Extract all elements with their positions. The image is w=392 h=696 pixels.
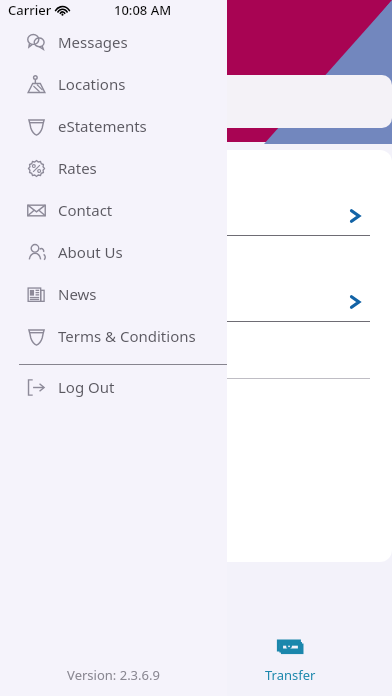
button[interactable]: Contact <box>0 189 227 231</box>
button[interactable]: eStatements <box>0 105 227 147</box>
staticText: Carrier <box>8 1 52 19</box>
staticText: Terms & Conditions <box>58 326 196 346</box>
button[interactable]: Terms & Conditions <box>0 315 227 357</box>
button[interactable]: Open details <box>20 236 392 321</box>
button[interactable]: Rates <box>0 147 227 189</box>
staticText: Messages <box>58 32 128 52</box>
staticText: Rates <box>58 158 97 178</box>
button[interactable]: Log Out <box>0 366 227 408</box>
staticText: News <box>58 284 97 304</box>
button[interactable]: Messages <box>0 21 227 63</box>
staticText: Locations <box>58 74 126 94</box>
staticText: Version: 2.3.6.9 <box>0 666 227 684</box>
staticText: Transfer <box>265 666 316 684</box>
button[interactable]: Transfer <box>251 628 330 688</box>
staticText: eStatements <box>58 116 147 136</box>
staticText: Contact <box>58 200 113 220</box>
button[interactable]: Open details <box>20 150 392 235</box>
button[interactable]: About Us <box>0 231 227 273</box>
other: Open details <box>348 295 362 309</box>
button[interactable]: Scheduled <box>40 75 392 128</box>
button[interactable]: Locations <box>0 63 227 105</box>
other: Open details <box>348 209 362 223</box>
button[interactable]: News <box>0 273 227 315</box>
staticText: Log Out <box>58 377 115 397</box>
staticText: 10:08 AM <box>114 1 172 19</box>
staticText: About Us <box>58 242 123 262</box>
other: Transfer <box>276 632 306 662</box>
